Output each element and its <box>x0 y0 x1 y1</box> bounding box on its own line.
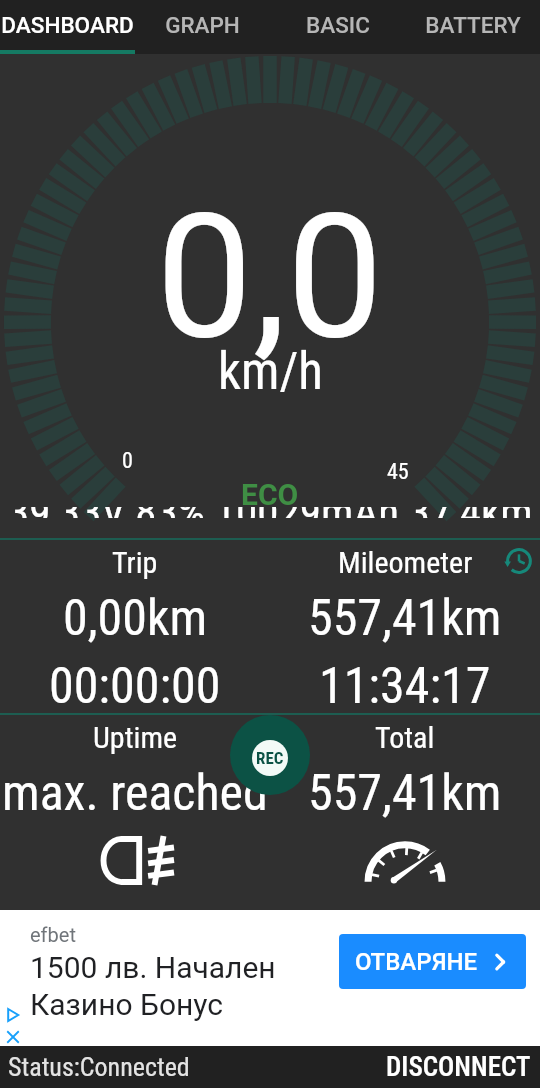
staticText: Total <box>375 720 435 755</box>
staticText: BATTERY <box>425 12 521 38</box>
button[interactable]: ОТВАРЯНЕ <box>339 934 526 989</box>
button[interactable]: GRAPH <box>135 0 270 54</box>
staticText: ОТВАРЯНЕ <box>355 948 478 976</box>
staticText: 0,00km <box>63 589 208 648</box>
staticText: 45 <box>387 459 409 485</box>
button[interactable]: DASHBOARD <box>0 0 135 54</box>
staticText: 557,41km <box>308 764 502 823</box>
staticText: 557,41km <box>308 589 502 648</box>
button[interactable]: DISCONNECT <box>386 1051 531 1083</box>
other: Close ad <box>4 1028 22 1046</box>
staticText: Казино Бонус <box>30 987 224 1022</box>
button[interactable]: Trip <box>0 540 270 713</box>
staticText: DASHBOARD <box>1 12 134 38</box>
staticText: DISCONNECT <box>386 1051 531 1083</box>
staticText: Uptime <box>93 720 178 755</box>
button[interactable]: Total <box>270 715 540 910</box>
staticText: 11:34:17 <box>319 657 491 713</box>
staticText: 1500 лв. Начален <box>30 950 276 985</box>
button[interactable]: BASIC <box>270 0 405 54</box>
button[interactable]: Mileometer <box>270 540 540 713</box>
staticText: 0,0 <box>156 176 384 378</box>
button[interactable]: Reset trip history <box>498 540 540 582</box>
staticText: REC <box>256 748 284 768</box>
button[interactable]: Uptime <box>0 715 270 910</box>
staticText: 0 <box>122 448 133 474</box>
other: Ad choices <box>3 1005 23 1025</box>
staticText: GRAPH <box>165 12 240 38</box>
button[interactable]: Cruise control <box>270 827 540 893</box>
staticText: 39,33V 83% 10029mAh 37,4km <box>8 507 533 518</box>
staticText: Mileometer <box>338 545 473 580</box>
button[interactable]: Headlight <box>0 827 270 893</box>
staticText: BASIC <box>306 12 370 38</box>
staticText: efbet <box>30 923 76 946</box>
staticText: max. reached <box>2 764 268 823</box>
staticText: km/h <box>218 342 323 402</box>
staticText: Status:Connected <box>8 1052 190 1082</box>
button[interactable]: BATTERY <box>405 0 540 54</box>
button[interactable]: REC <box>230 715 310 795</box>
staticText: 00:00:00 <box>49 657 221 713</box>
staticText: ECO <box>241 477 299 512</box>
staticText: Trip <box>112 545 158 580</box>
